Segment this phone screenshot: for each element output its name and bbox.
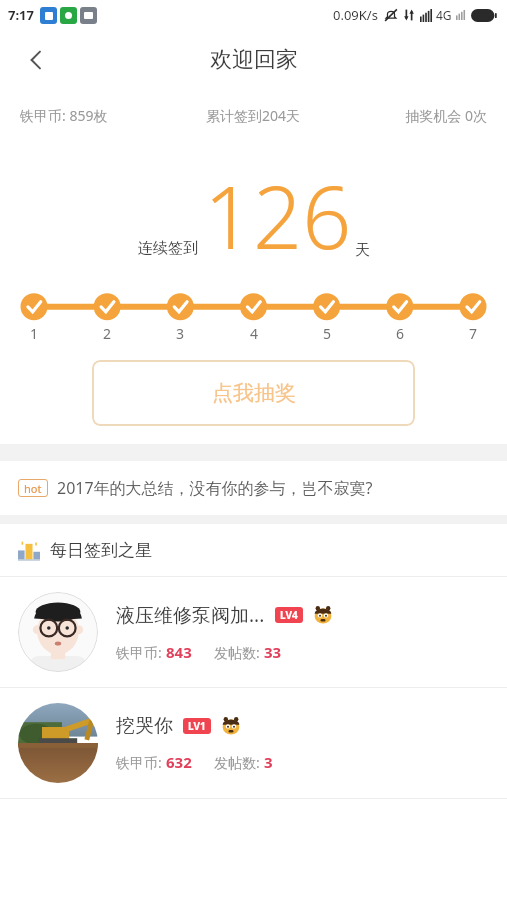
staticText: 126 [204,157,352,274]
staticText: 铁甲币: 859枚 [20,106,175,125]
staticText: 6 [396,324,405,343]
staticText: 2 [103,324,112,343]
staticText: 4G [436,7,452,23]
staticText: 发帖数: [214,753,264,772]
staticText: 632 [166,752,192,772]
staticText: 液压维修泵阀加... [116,602,265,628]
staticText: LV1 [188,719,206,733]
staticText: 2017年的大总结，没有你的参与，岂不寂寞? [57,477,373,499]
staticText: LV4 [280,608,298,622]
staticText: 铁甲币: [116,753,166,772]
staticText: 累计签到204天 [175,106,331,125]
staticText: hot [24,481,42,496]
staticText: 铁甲币: [116,643,166,662]
staticText: 欢迎回家 [210,46,298,74]
staticText: 每日签到之星 [50,540,152,561]
staticText: 33 [264,642,282,662]
staticText: 5 [323,324,332,343]
staticText: 抽奖机会 0次 [331,106,487,125]
staticText: 3 [264,752,273,772]
staticText: 点我抽奖 [212,380,296,406]
staticText: 7:17 [8,6,34,24]
staticText: 天 [355,241,370,260]
staticText: 843 [166,642,192,662]
staticText: 0.09K/s [333,6,378,24]
button[interactable]: 点我抽奖 [92,360,415,426]
staticText: 3 [176,324,185,343]
staticText: 1 [30,324,39,343]
button[interactable]: 液压维修泵阀加... [18,577,489,687]
staticText: 发帖数: [214,643,264,662]
staticText: 连续签到 [138,239,198,258]
button[interactable]: 挖哭你 [18,688,489,798]
staticText: 4 [250,324,259,343]
staticText: 挖哭你 [116,714,173,738]
staticText: 7 [469,324,478,343]
button[interactable]: Back [12,36,60,84]
button[interactable]: hot [18,461,489,515]
